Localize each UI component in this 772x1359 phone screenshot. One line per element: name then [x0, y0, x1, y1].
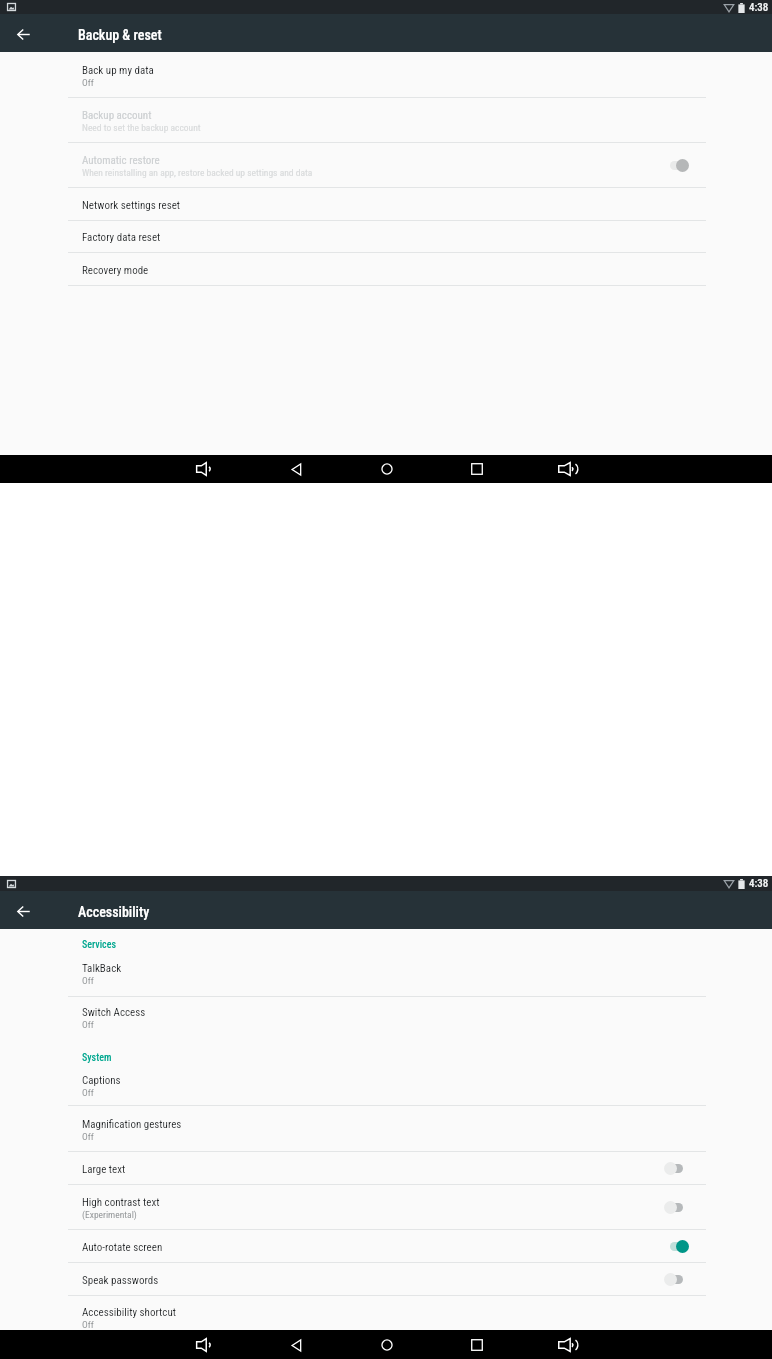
button[interactable]: Switch Access	[0, 997, 772, 1037]
button[interactable]: Toggle switch	[664, 1197, 689, 1217]
button[interactable]: Toggle switch	[664, 1158, 689, 1178]
button[interactable]: Magnification gestures	[0, 1106, 772, 1151]
staticText: Accessibility	[78, 904, 150, 920]
staticText: Off	[82, 1319, 94, 1330]
button[interactable]: Recent apps	[463, 455, 491, 483]
staticText: Off	[82, 1131, 94, 1142]
button[interactable]: Volume down	[190, 1331, 218, 1359]
staticText: Off	[82, 975, 94, 986]
staticText: Automatic restore	[82, 152, 160, 167]
staticText: Speak passwords	[82, 1272, 159, 1287]
button[interactable]: TalkBack	[0, 949, 772, 996]
staticText: When reinstalling an app, restore backed…	[82, 167, 313, 178]
button[interactable]: Navigate up	[9, 897, 37, 925]
staticText: Services	[82, 939, 117, 951]
button[interactable]: Toggle switch	[664, 1269, 689, 1289]
staticText: Captions	[82, 1072, 121, 1087]
staticText: High contrast text	[82, 1194, 160, 1209]
staticText: Large text	[82, 1161, 126, 1176]
staticText: Recovery mode	[82, 262, 149, 277]
button[interactable]: Home	[373, 1331, 401, 1359]
staticText: System	[82, 1052, 112, 1064]
button[interactable]: Accessibility shortcut	[0, 1296, 772, 1330]
staticText: Network settings reset	[82, 197, 181, 212]
button[interactable]: Toggle switch	[664, 1236, 689, 1256]
button[interactable]: Back	[282, 455, 310, 483]
button[interactable]: Back	[282, 1331, 310, 1359]
staticText: 4:38	[749, 877, 769, 890]
button[interactable]: Home	[373, 455, 401, 483]
staticText: Off	[82, 1087, 94, 1098]
button[interactable]: Recovery mode	[0, 253, 772, 285]
staticText: Magnification gestures	[82, 1116, 182, 1131]
button[interactable]: Volume up	[553, 1331, 581, 1359]
button[interactable]: Recent apps	[463, 1331, 491, 1359]
button[interactable]: Volume up	[553, 455, 581, 483]
staticText: Backup account	[82, 107, 152, 122]
staticText: Need to set the backup account	[82, 122, 201, 133]
staticText: Accessibility shortcut	[82, 1304, 176, 1319]
staticText: Switch Access	[82, 1004, 146, 1019]
button[interactable]: Auto-rotate screen	[0, 1230, 772, 1262]
button[interactable]: Factory data reset	[0, 221, 772, 252]
button[interactable]: Backup account	[0, 98, 772, 142]
button[interactable]: Navigate up	[9, 20, 37, 48]
staticText: (Experimental)	[82, 1209, 137, 1220]
staticText: Auto-rotate screen	[82, 1239, 163, 1254]
button[interactable]: Automatic restore	[0, 143, 772, 187]
button[interactable]: Back up my data	[0, 52, 772, 97]
staticText: Off	[82, 77, 94, 88]
button[interactable]: Captions	[0, 1064, 772, 1105]
staticText: Backup & reset	[78, 27, 162, 43]
button[interactable]: Speak passwords	[0, 1263, 772, 1295]
staticText: Factory data reset	[82, 229, 161, 244]
staticText: 4:38	[749, 1, 769, 14]
button[interactable]: Toggle switch	[664, 155, 689, 175]
staticText: Off	[82, 1019, 94, 1030]
button[interactable]: Large text	[0, 1152, 772, 1184]
button[interactable]: Volume down	[190, 455, 218, 483]
button[interactable]: High contrast text	[0, 1185, 772, 1229]
staticText: TalkBack	[82, 960, 122, 975]
button[interactable]: Network settings reset	[0, 188, 772, 220]
staticText: Back up my data	[82, 62, 154, 77]
